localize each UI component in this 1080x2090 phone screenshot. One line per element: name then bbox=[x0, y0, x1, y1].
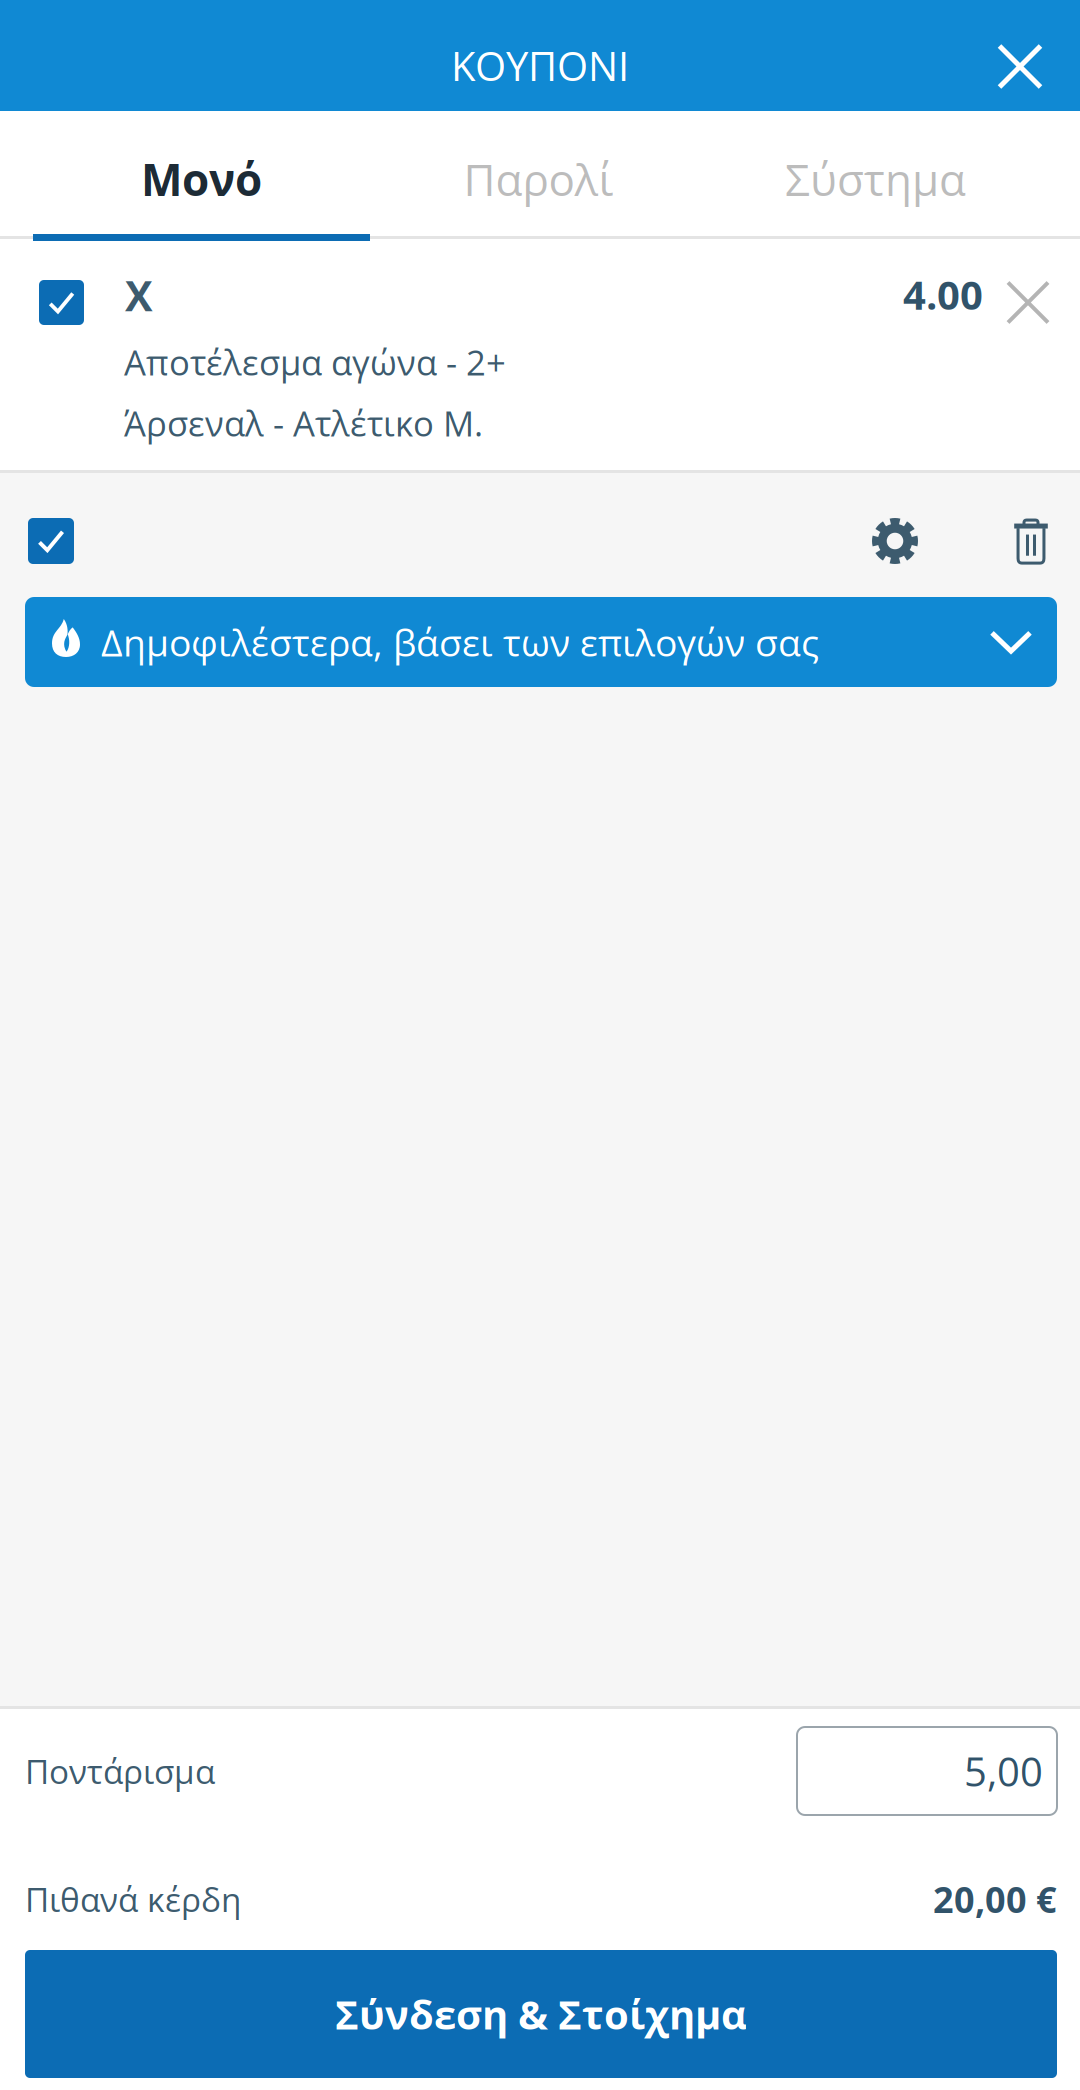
button[interactable]: Close bbox=[1000, 0, 1080, 111]
button[interactable]: Settings bbox=[808, 501, 982, 581]
button[interactable]: Δημοφιλέστερα, βάσει των επιλογών σας bbox=[25, 597, 1057, 687]
staticText: ΚΟΥΠΟΝΙ bbox=[451, 38, 629, 93]
button[interactable]: Toggle selection bbox=[39, 280, 84, 325]
button[interactable]: Delete bbox=[982, 501, 1080, 581]
staticText: Σύνδεση & Στοίχημα bbox=[335, 1987, 747, 2041]
staticText: Χ bbox=[125, 267, 153, 323]
staticText: 4.00 bbox=[903, 267, 983, 321]
button[interactable]: Select all bbox=[28, 501, 74, 581]
button[interactable]: Σύστημα bbox=[707, 111, 1044, 241]
staticText: Δημοφιλέστερα, βάσει των επιλογών σας bbox=[101, 617, 819, 667]
staticText: 5,00 bbox=[964, 1744, 1043, 1798]
staticText: Μονό bbox=[141, 149, 262, 209]
staticText: Σύστημα bbox=[785, 149, 966, 209]
button[interactable]: Remove selection bbox=[983, 280, 1073, 325]
staticText: Αποτέλεσμα αγώνα - 2+ bbox=[124, 338, 506, 386]
button[interactable]: Μονό bbox=[33, 111, 370, 241]
button[interactable]: Παρολί bbox=[370, 111, 707, 241]
staticText: Παρολί bbox=[463, 149, 613, 209]
staticText: Άρσεναλ - Ατλέτικο Μ. bbox=[124, 399, 483, 447]
staticText: 20,00 € bbox=[933, 1874, 1057, 1923]
button[interactable]: Σύνδεση & Στοίχημα bbox=[25, 1950, 1057, 2078]
staticText: Ποντάρισμα bbox=[25, 1748, 215, 1794]
staticText: Πιθανά κέρδη bbox=[25, 1876, 241, 1922]
